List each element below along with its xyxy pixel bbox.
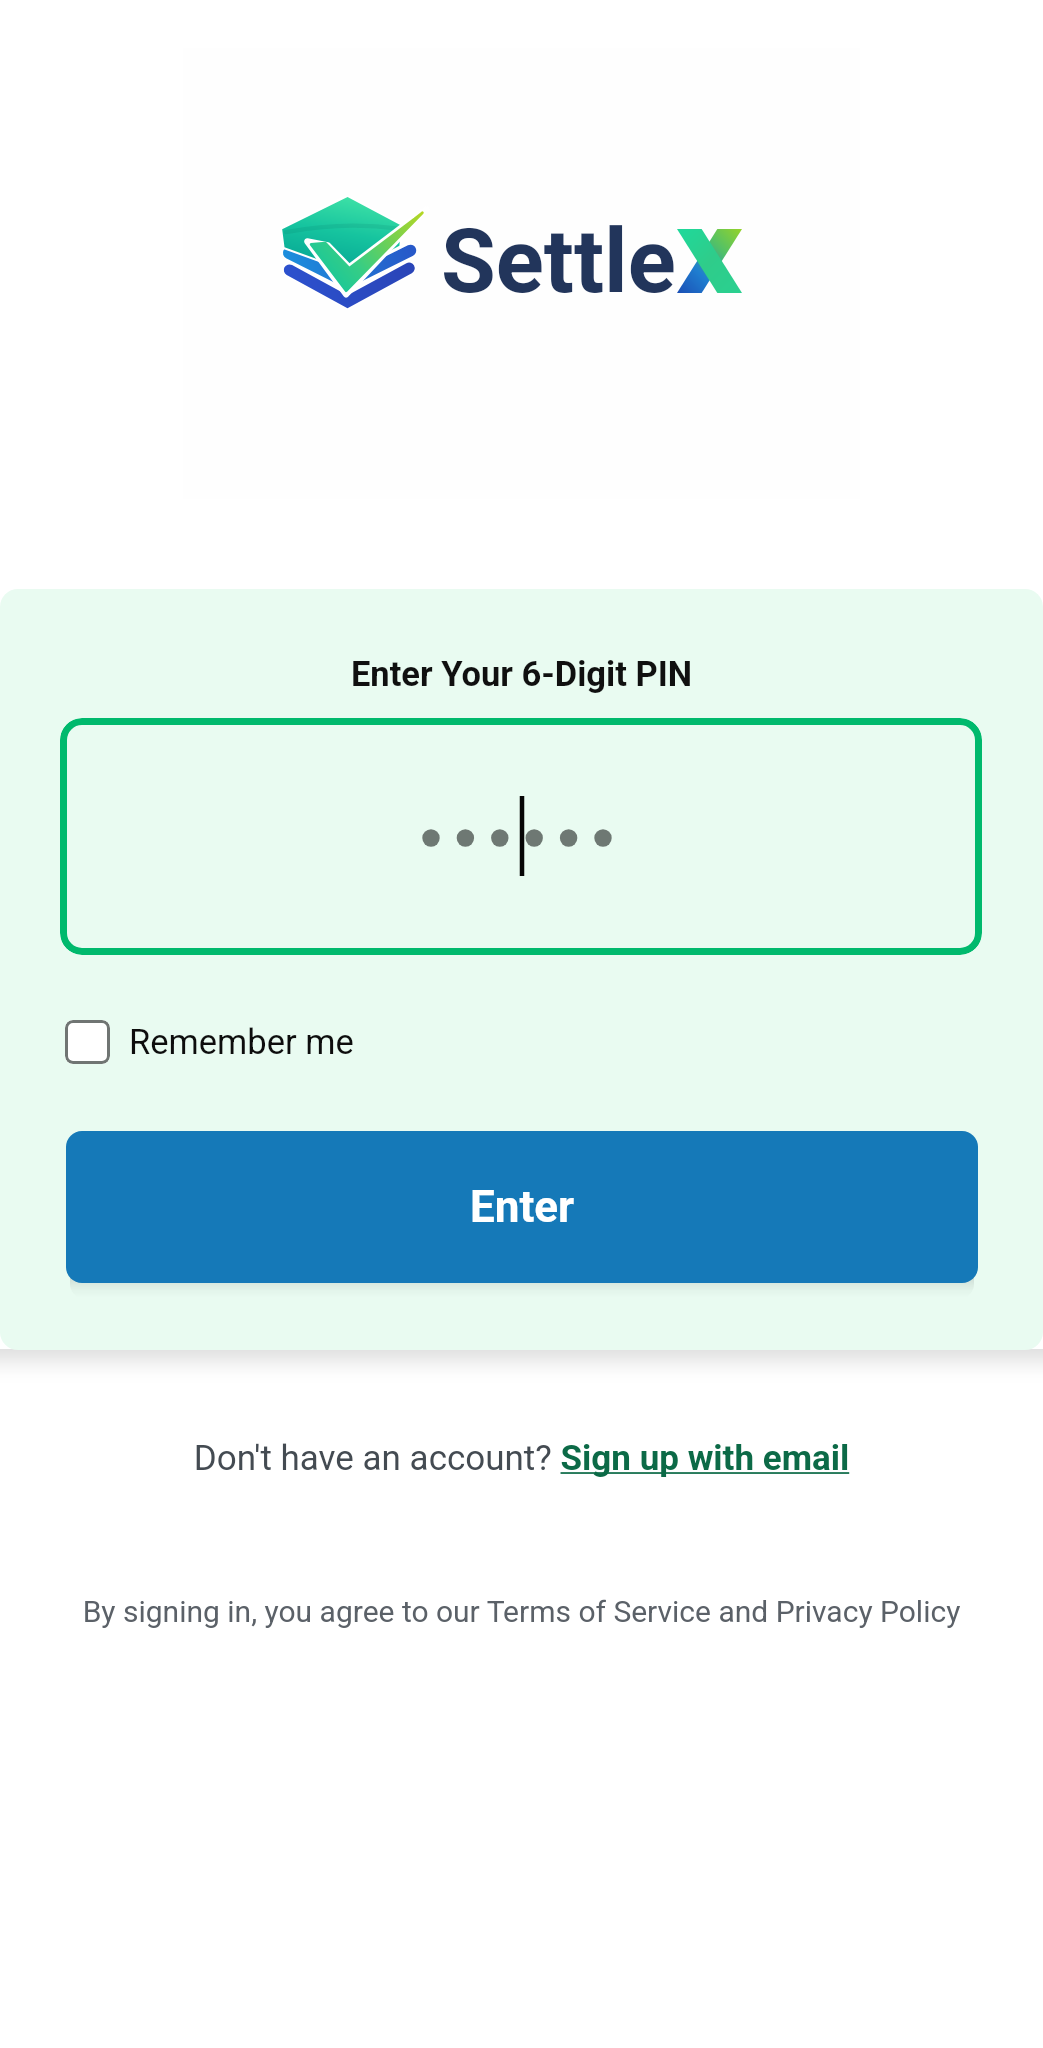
staticText: Enter xyxy=(470,1181,575,1233)
button[interactable]: Don't have an account? Sign up with emai… xyxy=(0,1438,1043,1479)
button[interactable]: Remember me checkbox xyxy=(65,1014,354,1070)
button[interactable]: Enter xyxy=(66,1131,978,1283)
other: Remember me checkbox xyxy=(65,1020,110,1064)
staticText: By signing in, you agree to our Terms of… xyxy=(0,1594,1043,1629)
other: SettleX logo xyxy=(281,195,421,317)
button[interactable]: 6 digit PIN entry field xyxy=(60,718,982,955)
staticText: Enter Your 6-Digit PIN xyxy=(0,654,1043,694)
staticText: Remember me xyxy=(129,1022,354,1062)
staticText: Settle xyxy=(441,209,676,313)
